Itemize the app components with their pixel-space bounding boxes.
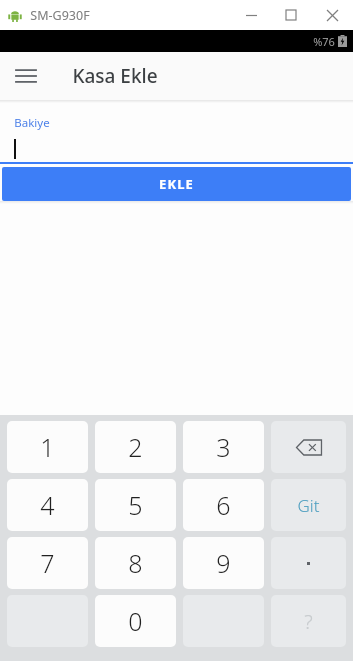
button[interactable]: 8 [95,537,176,589]
button[interactable]: Backspace [271,421,346,473]
button[interactable]: 5 [95,479,176,531]
staticText: Bakiye [14,115,50,131]
staticText: 7 [40,546,55,580]
button[interactable]: 0 [95,595,176,647]
staticText: 8 [128,546,143,580]
button[interactable]: Git [271,479,346,531]
button[interactable]: Menu [0,52,52,100]
button[interactable]: EKLE [2,167,351,201]
staticText: 2 [128,430,143,464]
button[interactable]: Maximize [271,0,311,30]
button[interactable]: 6 [183,479,264,531]
staticText: 1 [40,430,55,464]
staticText: EKLE [159,175,194,193]
button[interactable]: 1 [7,421,88,473]
staticText: 0 [128,604,143,638]
button[interactable]: 9 [183,537,264,589]
staticText: SM-G930F [30,7,90,24]
staticText: Git [297,494,320,517]
button[interactable]: 4 [7,479,88,531]
button[interactable]: 7 [7,537,88,589]
staticText: ? [304,608,313,635]
staticText: Kasa Ekle [72,63,158,89]
staticText: %76 [313,34,335,49]
button[interactable]: 2 [95,421,176,473]
button[interactable]: Decimal point [271,537,346,589]
button[interactable]: Minimize [231,0,271,30]
button[interactable] [0,135,353,162]
staticText: 3 [216,430,231,464]
staticText: 6 [216,488,231,522]
staticText: 5 [128,488,143,522]
staticText: 4 [40,488,55,522]
button[interactable]: Close [311,0,353,30]
button[interactable]: 3 [183,421,264,473]
staticText: 9 [216,546,231,580]
